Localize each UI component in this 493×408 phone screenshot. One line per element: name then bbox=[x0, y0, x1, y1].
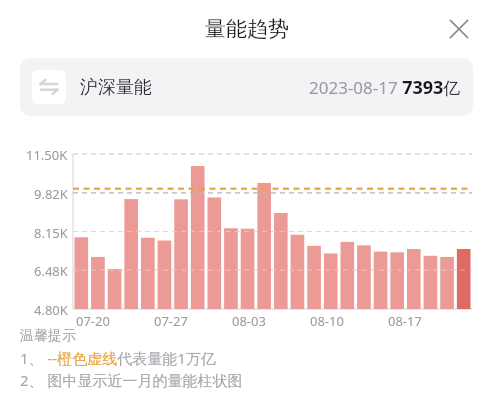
button[interactable]: 沪深量能 bbox=[20, 58, 473, 116]
staticText: 量能趋势 bbox=[205, 16, 289, 42]
staticText: 9.82K bbox=[34, 185, 68, 203]
staticText: 1、 --橙色虚线代表量能1万亿 bbox=[20, 348, 216, 368]
staticText: 07-20 bbox=[76, 312, 110, 330]
staticText: 温馨提示 bbox=[20, 327, 76, 345]
staticText: 沪深量能 bbox=[80, 76, 152, 99]
staticText: 07-27 bbox=[154, 312, 188, 330]
staticText: 8.15K bbox=[34, 224, 68, 242]
button[interactable]: Close bbox=[439, 9, 479, 49]
staticText: 6.48K bbox=[34, 262, 68, 280]
staticText: 08-10 bbox=[310, 312, 344, 330]
staticText: 2、 图中显示近一月的量能柱状图 bbox=[20, 370, 243, 390]
staticText: 08-17 bbox=[388, 312, 422, 330]
staticText: 08-03 bbox=[232, 312, 266, 330]
staticText: 2023-08-17 7393亿 bbox=[309, 75, 461, 100]
staticText: 4.80K bbox=[34, 301, 68, 319]
staticText: 11.50K bbox=[26, 146, 68, 164]
